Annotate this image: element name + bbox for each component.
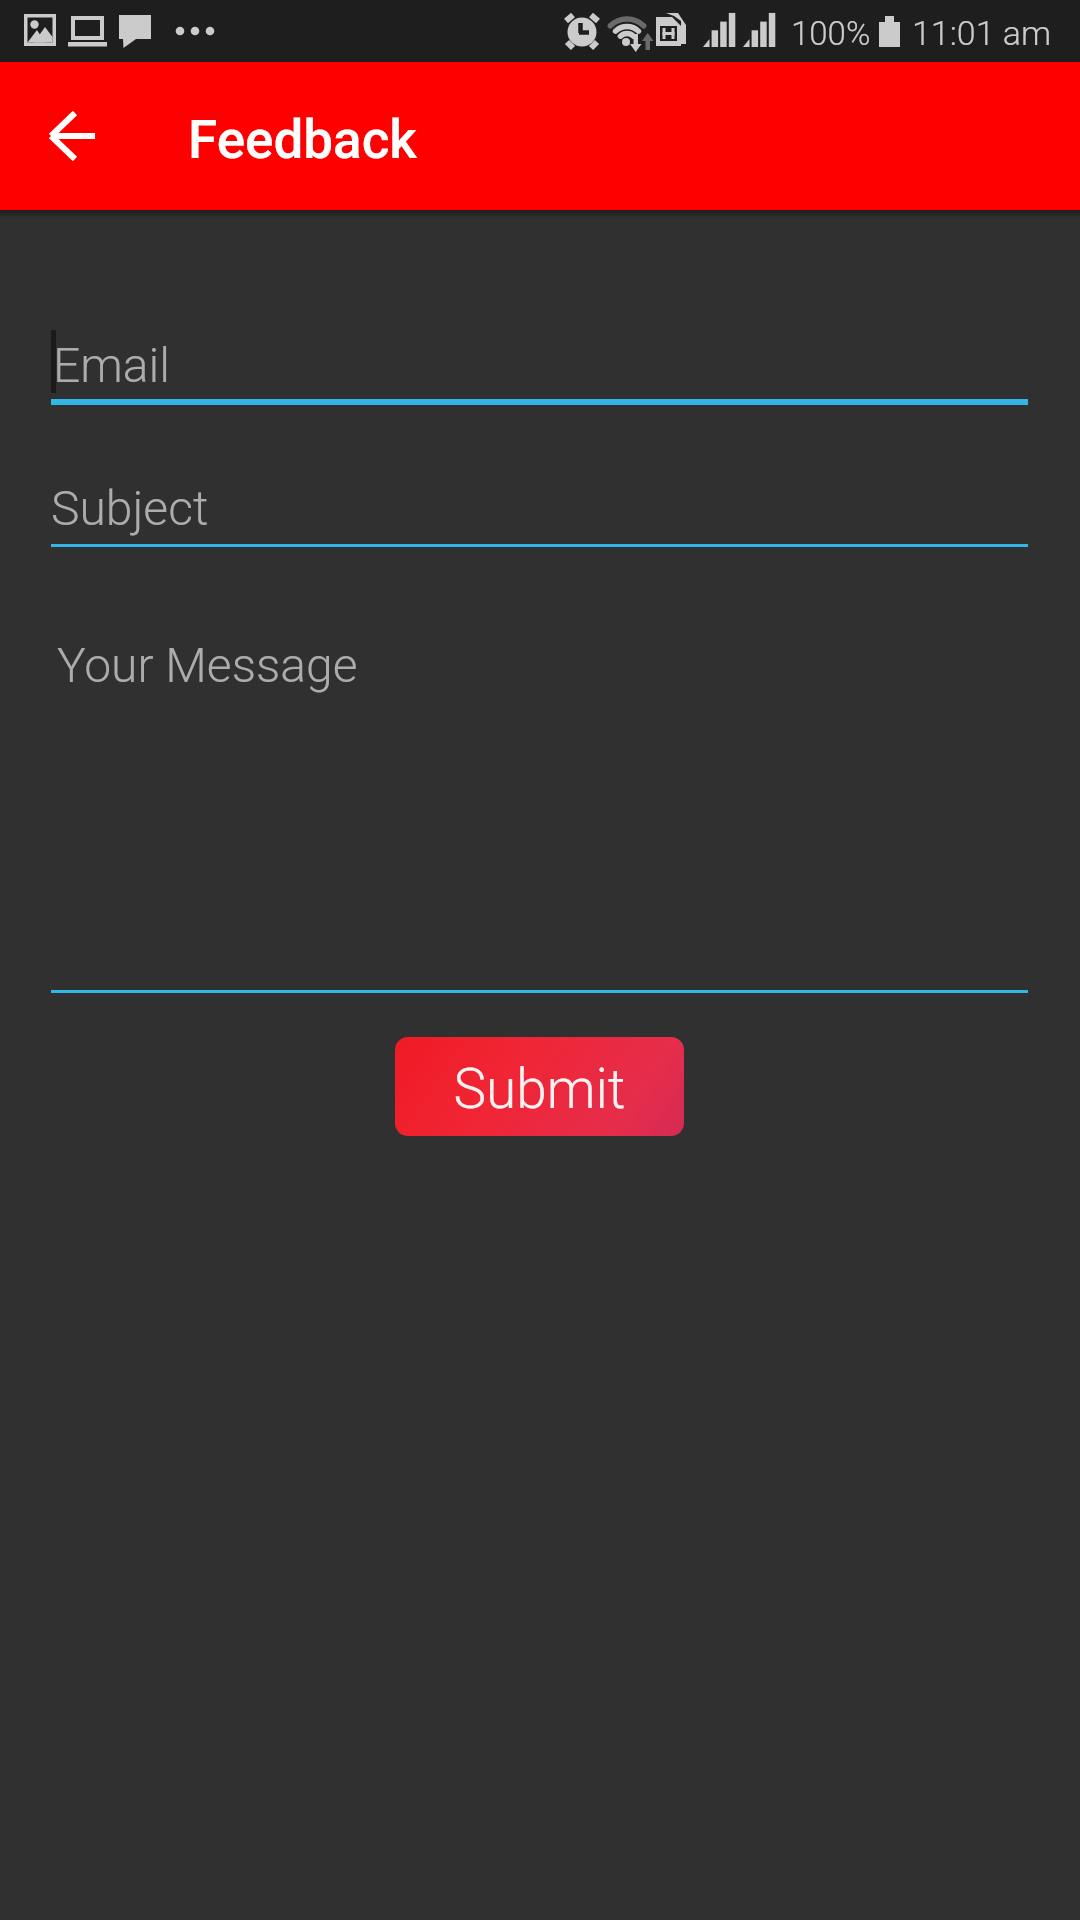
button[interactable]: Your Message bbox=[51, 623, 1028, 993]
staticText: 100% bbox=[791, 14, 871, 53]
staticText: Subject bbox=[51, 480, 209, 536]
staticText: Your Message bbox=[57, 637, 358, 693]
button[interactable]: Subject bbox=[51, 463, 1028, 547]
button[interactable]: Email bbox=[51, 320, 1028, 405]
staticText: Email bbox=[53, 337, 171, 393]
button[interactable]: Submit bbox=[395, 1037, 684, 1136]
staticText: Submit bbox=[453, 1057, 626, 1121]
staticText: Feedback bbox=[188, 109, 417, 171]
staticText: 11:01 am bbox=[912, 13, 1052, 53]
button[interactable]: Navigate back bbox=[8, 92, 96, 180]
